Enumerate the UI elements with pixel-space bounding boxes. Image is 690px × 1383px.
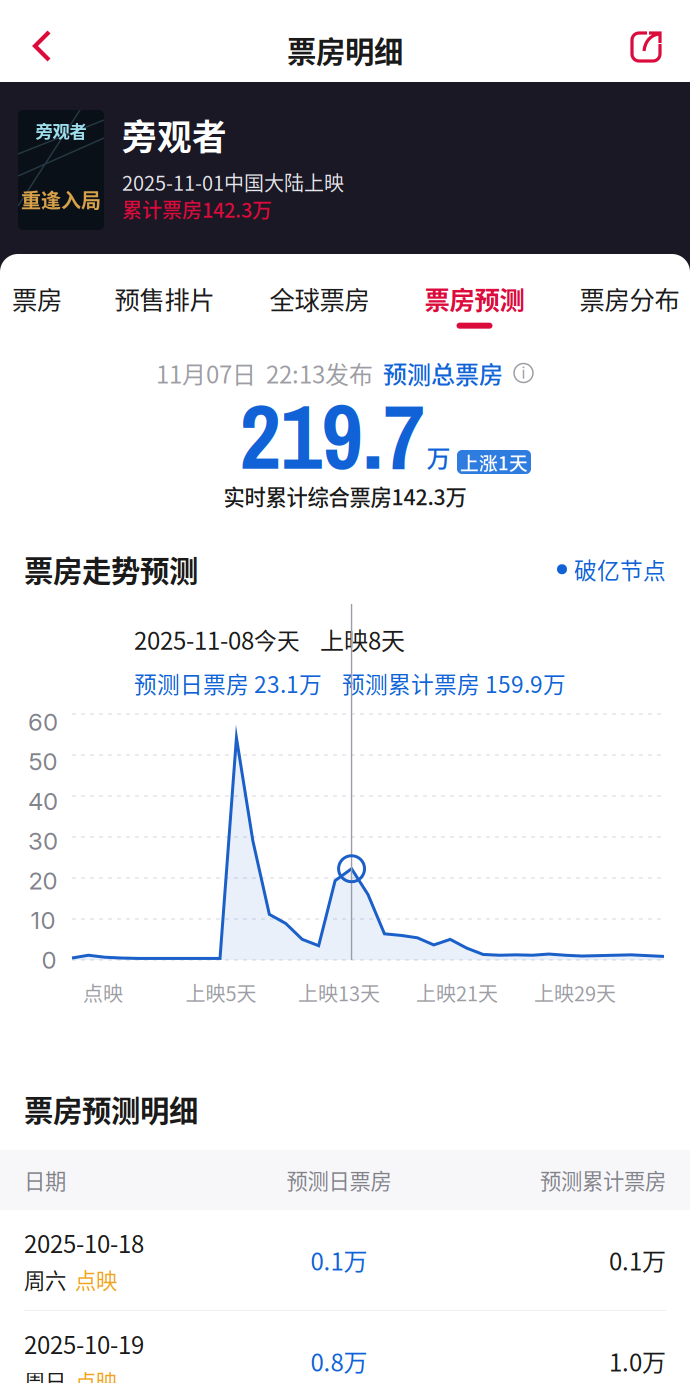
staticText: 日期 bbox=[24, 1165, 66, 1195]
staticText: 0.1万 bbox=[310, 1243, 367, 1277]
staticText: 上映13天 bbox=[298, 978, 380, 1007]
staticText: 累计票房142.3万 bbox=[122, 194, 272, 223]
staticText: 0 bbox=[41, 945, 56, 974]
staticText: 预测累计票房 159.9万 bbox=[342, 667, 566, 700]
button[interactable]: 返回 bbox=[14, 18, 70, 74]
staticText: 20 bbox=[28, 866, 57, 895]
staticText: i bbox=[521, 363, 525, 383]
button[interactable]: 分享 bbox=[618, 19, 674, 75]
staticText: 票房预测明细 bbox=[24, 1088, 198, 1130]
staticText: 上映5天 bbox=[185, 978, 256, 1007]
staticText: 周六 bbox=[24, 1264, 66, 1295]
staticText: 上涨1天 bbox=[460, 448, 528, 475]
staticText: 预测日票房 bbox=[286, 1165, 391, 1195]
staticText: 2025-11-01中国大陆上映 bbox=[122, 167, 344, 196]
staticText: 重逢入局 bbox=[21, 185, 101, 214]
staticText: 2025-10-18 bbox=[24, 1225, 144, 1260]
staticText: 上映21天 bbox=[416, 978, 498, 1007]
button[interactable]: 2025-10-19 bbox=[0, 1311, 690, 1383]
staticText: 旁观者 bbox=[35, 118, 86, 143]
button[interactable]: 票房预测 bbox=[397, 258, 552, 338]
staticText: 1.0万 bbox=[609, 1344, 666, 1378]
staticText: 票房明细 bbox=[287, 29, 403, 71]
staticText: 点映 bbox=[83, 978, 123, 1007]
staticText: 预测日票房 23.1万 bbox=[134, 667, 322, 700]
staticText: 2025-11-08 bbox=[134, 622, 254, 657]
staticText: 0.8万 bbox=[310, 1344, 367, 1378]
button[interactable]: 全球票房 bbox=[242, 258, 397, 338]
staticText: 219.7 bbox=[239, 375, 424, 497]
button[interactable]: 预售排片 bbox=[87, 258, 242, 338]
staticText: 40 bbox=[28, 787, 58, 816]
staticText: 60 bbox=[28, 707, 58, 736]
staticText: 破亿节点 bbox=[574, 553, 666, 586]
staticText: 票房分布 bbox=[579, 280, 679, 317]
staticText: 万 bbox=[426, 440, 450, 474]
staticText: 上映8天 bbox=[320, 622, 405, 657]
staticText: 22:13发布 bbox=[266, 356, 373, 390]
staticText: 实时累计综合票房142.3万 bbox=[223, 481, 466, 511]
staticText: 票房预测 bbox=[424, 280, 524, 317]
button[interactable]: 票房分布 bbox=[552, 258, 690, 338]
staticText: 30 bbox=[28, 826, 58, 855]
staticText: 预测累计票房 bbox=[540, 1165, 666, 1195]
staticText: 预测总票房 bbox=[383, 356, 503, 390]
staticText: 预售排片 bbox=[114, 280, 214, 317]
staticText: 50 bbox=[28, 747, 57, 776]
staticText: 点映 bbox=[75, 1365, 117, 1383]
staticText: 10 bbox=[30, 906, 55, 935]
staticText: 11月07日 bbox=[156, 356, 256, 390]
staticText: 上映29天 bbox=[534, 978, 616, 1007]
staticText: 票房走势预测 bbox=[24, 548, 198, 590]
staticText: 点映 bbox=[75, 1264, 117, 1295]
staticText: 周日 bbox=[24, 1365, 66, 1383]
button[interactable]: 2025-10-18 bbox=[0, 1210, 690, 1310]
staticText: 0.1万 bbox=[609, 1243, 666, 1277]
staticText: 2025-10-19 bbox=[24, 1326, 144, 1361]
staticText: 票房 bbox=[12, 280, 62, 317]
staticText: 旁观者 bbox=[122, 110, 227, 160]
staticText: 全球票房 bbox=[269, 280, 369, 317]
button[interactable]: 票房 bbox=[0, 258, 87, 338]
staticText: 今天 bbox=[254, 623, 300, 656]
